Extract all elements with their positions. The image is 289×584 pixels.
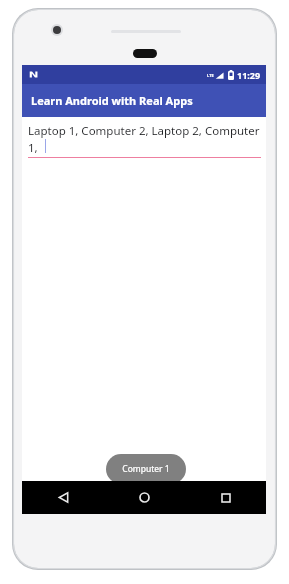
button[interactable]: Computer 1 [106,454,186,484]
button[interactable]: Back [22,481,104,514]
button[interactable]: Learn Android with Real Apps [22,84,266,117]
staticText: Computer 1 [122,463,170,475]
button[interactable]: Laptop 1, Computer 2, Laptop 2, Computer… [28,123,261,158]
staticText: LTE [207,73,214,78]
staticText: 11:29 [237,69,261,81]
button[interactable]: Home [104,481,185,514]
staticText: Laptop 1, Computer 2, Laptop 2, Computer… [28,123,260,155]
staticText: Learn Android with Real Apps [31,93,193,108]
button[interactable]: Recent apps [185,481,266,514]
